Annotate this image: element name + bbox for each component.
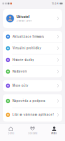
staticText: Líbí se vám naše aplikace? [12, 113, 53, 117]
button[interactable]: Aktualizace firmwaru [3, 31, 62, 42]
staticText: Moje účty [12, 84, 28, 87]
button[interactable]: Oblíbené [22, 126, 43, 135]
staticText: Uživatel [16, 15, 29, 19]
staticText: Virtuální prohlídky [12, 47, 41, 50]
staticText: Nastavení [12, 70, 27, 73]
button[interactable]: Nápověda a podpora [3, 94, 62, 108]
staticText: Profil [51, 132, 57, 135]
button[interactable]: Moje účty [3, 80, 62, 91]
button[interactable]: Líbí se vám naše aplikace? [3, 108, 62, 122]
staticText: Domů [8, 132, 14, 135]
button[interactable]: Profil [43, 126, 65, 135]
staticText: Zobrazit profil [16, 19, 32, 22]
staticText: Oblíbené [28, 132, 37, 135]
staticText: Historie služby [12, 58, 34, 62]
button[interactable]: Virtuální prohlídky [3, 43, 62, 54]
button[interactable]: Historie služby [3, 54, 62, 66]
button[interactable]: Domů [0, 126, 22, 135]
staticText: Aktualizace firmwaru [12, 35, 44, 38]
button[interactable]: Uživatel [0, 9, 65, 28]
staticText: 11:54 [52, 2, 59, 5]
button[interactable]: Nastavení [3, 66, 62, 77]
staticText: Nápověda a podpora [12, 99, 45, 103]
